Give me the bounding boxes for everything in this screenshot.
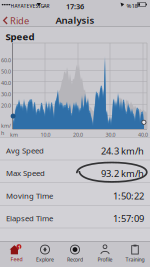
staticText: 60.0	[1, 57, 11, 64]
staticText: 30.0	[105, 131, 115, 138]
staticText: 1:50:22	[113, 190, 144, 202]
button[interactable]: Record	[0, 0, 85, 263]
staticText: Record	[67, 256, 83, 263]
staticText: Profile	[97, 256, 112, 263]
staticText: %18	[126, 2, 137, 10]
button[interactable]: 1	[0, 0, 24, 263]
staticText: 50.0	[1, 68, 11, 75]
button[interactable]: Training	[0, 0, 145, 263]
staticText: 1:57:09	[113, 212, 144, 225]
button[interactable]: Explore	[0, 0, 55, 263]
staticText: 1	[18, 245, 20, 251]
button[interactable]: Profile	[0, 0, 115, 263]
staticText: Avg Speed	[6, 145, 44, 156]
staticText: HAYATEVESIGAR	[10, 2, 49, 9]
staticText: 20.0	[1, 102, 11, 109]
staticText: 40.0	[138, 131, 148, 138]
staticText: 24.3 km/h	[101, 144, 144, 157]
staticText: Feed	[11, 256, 23, 263]
staticText: 17:36	[66, 1, 84, 11]
staticText: km	[10, 131, 18, 138]
button[interactable]: Ride	[0, 0, 29, 27]
staticText: Explore	[36, 256, 54, 263]
staticText: Ride	[10, 14, 29, 27]
staticText: Moving Time	[6, 190, 53, 201]
staticText: 20.0	[73, 131, 83, 138]
staticText: 30.0	[1, 90, 11, 98]
staticText: Training	[125, 256, 144, 263]
staticText: Speed	[5, 30, 34, 43]
staticText: km/h	[1, 122, 11, 136]
staticText: Analysis	[55, 14, 94, 27]
staticText: 40.0	[1, 79, 11, 86]
staticText: Max Speed	[6, 168, 45, 178]
staticText: 10.0	[40, 131, 50, 138]
staticText: 93.2 km/h	[101, 167, 144, 180]
staticText: Elapsed Time	[6, 213, 53, 223]
